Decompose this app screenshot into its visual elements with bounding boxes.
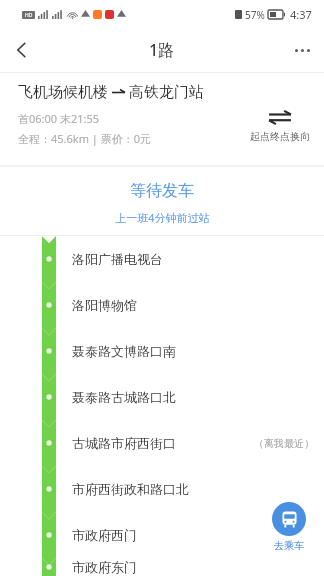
button[interactable]: 古城路市府西街口: [0, 420, 324, 466]
staticText: 1路: [149, 39, 175, 61]
button[interactable]: 更多: [280, 28, 324, 72]
button[interactable]: 起点终点换向: [250, 110, 310, 143]
staticText: HD: [25, 12, 33, 19]
staticText: 起点终点换向: [250, 130, 310, 143]
button[interactable]: 聂泰路古城路口北: [0, 374, 324, 420]
staticText: 洛阳博物馆: [72, 297, 137, 313]
button[interactable]: 市政府西门: [0, 512, 324, 558]
staticText: 首06:00 末21:55: [18, 111, 100, 126]
staticText: 全程：45.6km | 票价：0元: [18, 131, 152, 146]
staticText: 去乘车: [274, 539, 304, 552]
staticText: （离我最近）: [254, 437, 314, 450]
staticText: 聂泰路古城路口北: [72, 389, 176, 405]
button[interactable]: 去乘车: [272, 502, 306, 552]
button[interactable]: 洛阳广播电视台: [0, 236, 324, 282]
staticText: 市政府东门: [72, 559, 137, 575]
staticText: 洛阳广播电视台: [72, 251, 163, 267]
staticText: 飞机场候机楼: [18, 83, 108, 102]
staticText: 等待发车: [130, 181, 194, 201]
staticText: 古城路市府西街口: [72, 435, 176, 451]
button[interactable]: 市府西街政和路口北: [0, 466, 324, 512]
staticText: 高铁龙门站: [129, 83, 204, 102]
button[interactable]: 洛阳博物馆: [0, 282, 324, 328]
button[interactable]: 返回: [0, 28, 44, 72]
staticText: 聂泰路文博路口南: [72, 343, 176, 359]
staticText: 57%: [245, 8, 265, 22]
staticText: 上一班4分钟前过站: [115, 210, 210, 225]
button[interactable]: 市政府东门: [0, 558, 324, 576]
staticText: 市政府西门: [72, 527, 137, 543]
button[interactable]: 聂泰路文博路口南: [0, 328, 324, 374]
staticText: 市府西街政和路口北: [72, 481, 189, 497]
staticText: 4:37: [290, 7, 312, 22]
